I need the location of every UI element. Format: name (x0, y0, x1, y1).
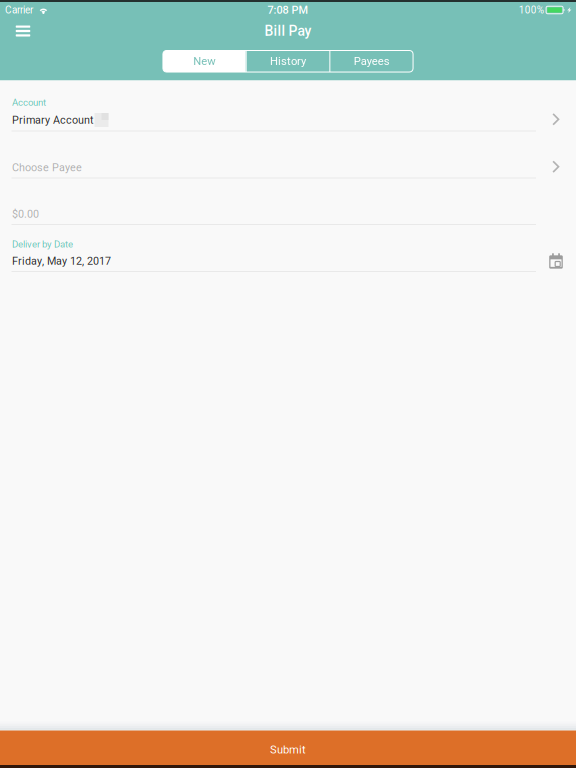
staticText: Carrier (5, 4, 33, 16)
staticText: Choose Payee (12, 161, 82, 174)
staticText: $0.00 (12, 208, 39, 220)
button[interactable]: Menu (7, 18, 39, 44)
staticText: Primary Account (12, 114, 94, 126)
button[interactable]: Payees (330, 50, 413, 72)
staticText: 100% (519, 4, 544, 16)
staticText: Account (12, 97, 46, 108)
staticText: New (193, 55, 215, 68)
staticText: Deliver by Date (12, 239, 73, 250)
button[interactable]: History (247, 50, 329, 72)
staticText: Friday, May 12, 2017 (12, 255, 111, 267)
button[interactable]: New (163, 50, 246, 72)
button[interactable]: Submit (0, 730, 576, 765)
staticText: 7:08 PM (267, 4, 308, 16)
staticText: Bill Pay (264, 23, 311, 39)
staticText: History (270, 55, 306, 68)
button[interactable]: Account (0, 80, 576, 130)
staticText: Submit (270, 743, 306, 756)
button[interactable]: Choose Payee (0, 131, 576, 177)
button[interactable]: Deliver by Date (0, 225, 576, 271)
staticText: Payees (354, 55, 390, 68)
